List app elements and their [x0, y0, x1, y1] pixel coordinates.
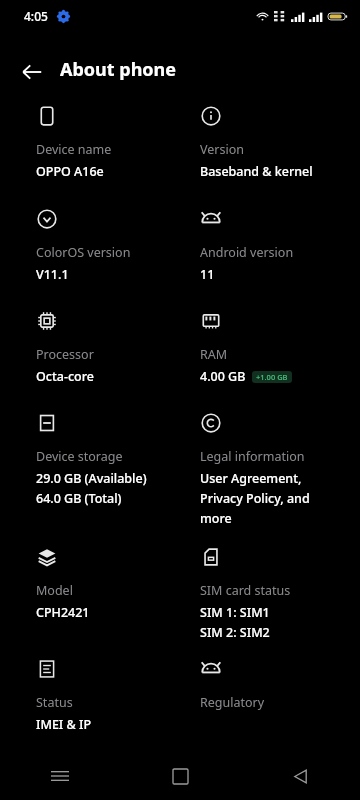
staticText: User Agreement, — [200, 470, 302, 487]
button[interactable]: RAM — [200, 310, 345, 385]
staticText: RAM — [200, 346, 228, 363]
staticText: 11 — [200, 266, 215, 283]
button[interactable]: SIM card status — [200, 546, 345, 641]
button[interactable]: Legal information — [200, 412, 345, 527]
staticText: 64.0 GB (Total) — [36, 490, 122, 507]
button[interactable]: Status — [36, 658, 186, 733]
button[interactable]: Device storage — [36, 412, 186, 507]
staticText: Privacy Policy, and — [200, 490, 310, 507]
button[interactable]: ColorOS version — [36, 208, 186, 283]
staticText: IMEI & IP — [36, 716, 92, 733]
button[interactable]: Back — [8, 48, 56, 96]
staticText: SIM card status — [200, 582, 291, 599]
staticText: 4.00 GB — [200, 368, 246, 385]
staticText: Octa-core — [36, 368, 94, 385]
staticText: OPPO A16e — [36, 163, 104, 180]
button[interactable]: Device name — [36, 105, 186, 180]
button[interactable]: Regulatory — [200, 658, 345, 711]
button[interactable]: Recent apps — [0, 752, 120, 800]
staticText: About phone — [60, 57, 177, 82]
button[interactable]: Processor — [36, 310, 186, 385]
staticText: Version — [200, 141, 244, 158]
button[interactable]: Home — [120, 752, 240, 800]
staticText: SIM 2: SIM2 — [200, 624, 270, 641]
staticText: 29.0 GB (Available) — [36, 470, 147, 487]
staticText: Device name — [36, 141, 112, 158]
staticText: Android version — [200, 244, 294, 261]
staticText: Model — [36, 582, 73, 599]
button[interactable]: Version — [200, 105, 345, 180]
staticText: Processor — [36, 346, 94, 363]
staticText: Device storage — [36, 448, 123, 465]
button[interactable]: Android version — [200, 208, 345, 283]
staticText: more — [200, 510, 232, 527]
staticText: 4:05 — [24, 8, 48, 24]
staticText: +1.00 GB — [256, 372, 288, 382]
staticText: V11.1 — [36, 266, 69, 283]
button[interactable]: Model — [36, 546, 186, 621]
staticText: SIM 1: SIM1 — [200, 604, 270, 621]
button[interactable]: Back — [240, 752, 360, 800]
staticText: Status — [36, 694, 73, 711]
staticText: CPH2421 — [36, 604, 90, 621]
staticText: Baseband & kernel — [200, 163, 313, 180]
staticText: Legal information — [200, 448, 305, 465]
staticText: ColorOS version — [36, 244, 131, 261]
staticText: Regulatory — [200, 694, 265, 711]
